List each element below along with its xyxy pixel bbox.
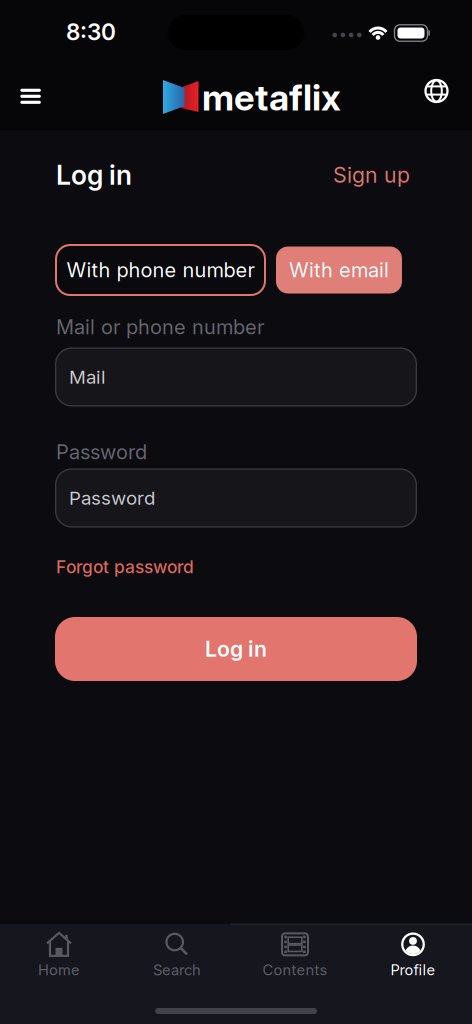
staticText: Search <box>153 961 201 979</box>
staticText: With phone number <box>66 258 254 282</box>
staticText: Home <box>38 961 80 979</box>
button[interactable]: Search <box>118 931 236 979</box>
staticText: Log in <box>56 159 132 191</box>
staticText: Sign up <box>333 162 410 188</box>
button[interactable]: Sign up <box>333 162 410 188</box>
staticText: Password <box>56 440 147 464</box>
button[interactable]: With email <box>276 246 402 293</box>
button[interactable]: Profile <box>354 931 472 979</box>
button[interactable]: Menu <box>14 83 47 110</box>
staticText: With email <box>289 258 389 282</box>
button[interactable]: Language <box>420 75 452 107</box>
staticText: Forgot password <box>56 557 194 577</box>
staticText: Log in <box>205 636 267 662</box>
button[interactable]: Contents <box>236 931 354 979</box>
staticText: metaflix <box>202 76 341 119</box>
staticText: Contents <box>262 961 327 979</box>
staticText: Mail or phone number <box>56 315 264 339</box>
staticText: Profile <box>390 961 435 979</box>
staticText: Password <box>69 487 155 509</box>
button[interactable]: Log in <box>55 617 417 681</box>
button[interactable]: Forgot password <box>56 557 194 577</box>
staticText: 8:30 <box>66 19 116 45</box>
button[interactable]: With phone number <box>55 244 266 296</box>
staticText: Mail <box>69 366 106 388</box>
button[interactable]: Home <box>0 931 118 979</box>
